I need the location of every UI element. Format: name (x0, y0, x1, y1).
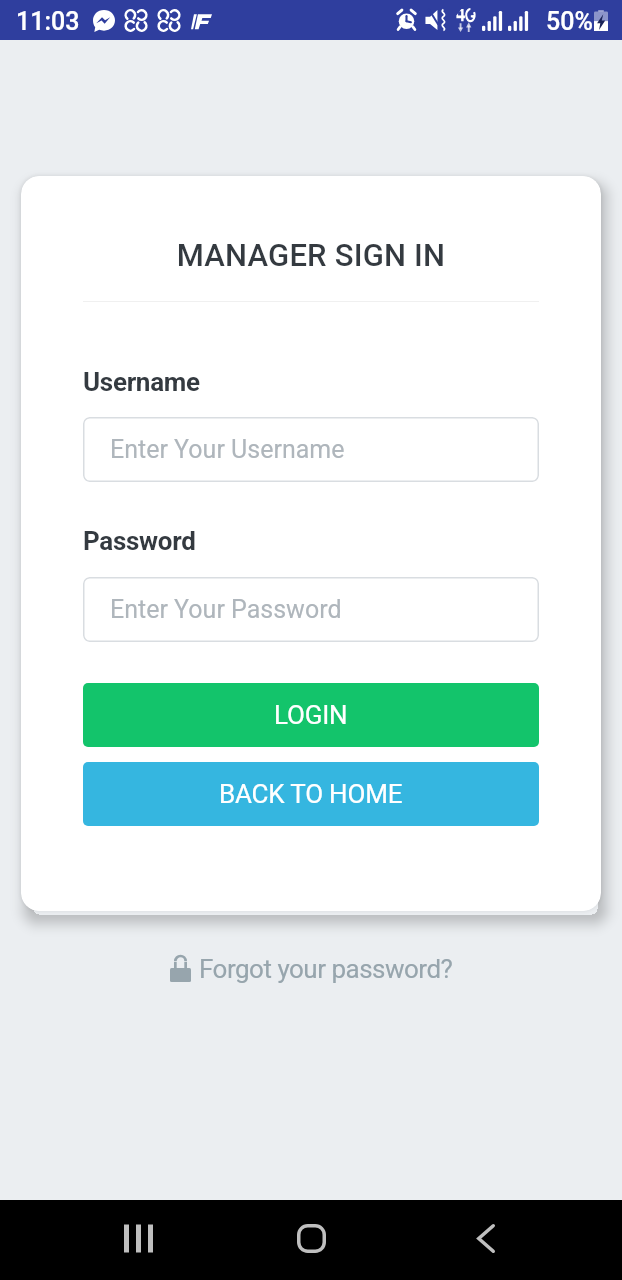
button[interactable]: Recent apps (0, 1200, 277, 1280)
staticText: LOGIN (274, 700, 348, 730)
button[interactable]: BACK TO HOME (83, 762, 539, 826)
button[interactable]: LOGIN (83, 683, 539, 747)
button[interactable]: Enter Your Password (83, 577, 539, 642)
staticText: Enter Your Password (110, 595, 342, 624)
button[interactable]: Back (345, 1200, 622, 1280)
staticText: Forgot your password? (199, 954, 453, 984)
staticText: Username (83, 367, 200, 397)
button[interactable]: Enter Your Username (83, 417, 539, 482)
staticText: Password (83, 526, 196, 556)
staticText: 11:03 (16, 7, 80, 36)
staticText: MANAGER SIGN IN (83, 237, 539, 273)
button[interactable]: Forgot your password? (170, 954, 453, 984)
staticText: BACK TO HOME (219, 779, 403, 809)
button[interactable]: Home (0, 1200, 622, 1280)
staticText: 50% (546, 7, 593, 36)
staticText: Enter Your Username (110, 435, 345, 464)
